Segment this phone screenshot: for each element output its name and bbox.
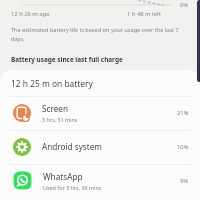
staticText: Battery usage since last full charge <box>11 55 123 64</box>
button[interactable]: WhatsApp <box>0 165 200 198</box>
staticText: 9% <box>180 177 189 185</box>
button[interactable]: Android system <box>0 131 200 164</box>
staticText: 21% <box>177 109 189 117</box>
staticText: 12 h 25 m on battery <box>11 78 93 89</box>
staticText: The estimated battery life is based on y… <box>11 26 183 42</box>
staticText: 12 h 26 m ago <box>11 10 50 18</box>
staticText: WhatsApp <box>43 171 83 182</box>
staticText: Screen <box>42 103 68 114</box>
staticText: 1 h 48 m left <box>127 10 161 18</box>
staticText: 3 hrs, 51 mins <box>42 116 78 123</box>
staticText: Used for 3 hrs, 56 mins <box>43 184 102 191</box>
button[interactable]: Screen <box>0 97 200 130</box>
staticText: 0% <box>180 1 189 9</box>
staticText: 10% <box>177 143 189 151</box>
staticText: Android system <box>42 141 103 152</box>
